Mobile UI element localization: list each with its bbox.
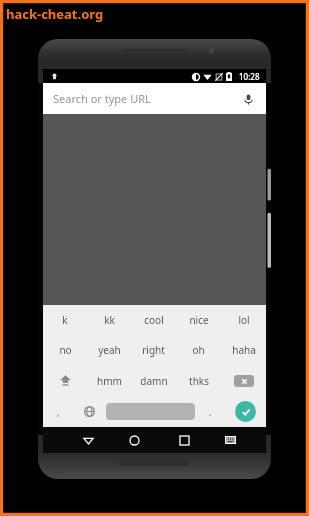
button[interactable]: Voice search (238, 89, 258, 109)
button[interactable]: lol (221, 305, 266, 335)
button[interactable]: right (131, 335, 176, 365)
button[interactable]: Search or type URL (43, 83, 266, 114)
button[interactable]: haha (221, 335, 266, 365)
button[interactable]: damn (131, 365, 176, 396)
button[interactable]: kk (87, 305, 131, 335)
staticText: kk (104, 313, 115, 327)
staticText: , (57, 406, 60, 418)
staticText: oh (192, 343, 205, 357)
button[interactable]: cool (131, 305, 176, 335)
button[interactable]: k (43, 305, 87, 335)
button[interactable]: . (195, 396, 225, 427)
button[interactable]: Change language (73, 396, 106, 427)
staticText: thks (189, 374, 209, 388)
button[interactable]: Switch keyboard (209, 427, 251, 453)
button[interactable]: no (43, 335, 87, 365)
staticText: k (62, 313, 68, 327)
staticText: . (209, 406, 212, 418)
staticText: cool (144, 313, 164, 327)
staticText: damn (140, 374, 168, 388)
button[interactable]: Enter (235, 401, 256, 422)
button[interactable]: thks (176, 365, 221, 396)
button[interactable]: yeah (87, 335, 131, 365)
staticText: nice (189, 313, 209, 327)
staticText: haha (232, 343, 256, 357)
button[interactable]: Recent apps (159, 427, 209, 453)
button[interactable]: nice (176, 305, 221, 335)
staticText: 10:28 (239, 71, 260, 82)
button[interactable]: Backspace (221, 365, 266, 396)
button[interactable]: Shift (43, 365, 87, 396)
staticText: right (142, 343, 165, 357)
staticText: hack-cheat.org (6, 5, 104, 23)
button[interactable]: hmm (87, 365, 131, 396)
staticText: hmm (97, 374, 122, 388)
button[interactable]: oh (176, 335, 221, 365)
staticText: lol (238, 313, 250, 327)
button[interactable]: Home (109, 427, 159, 453)
staticText: Search or type URL (53, 91, 238, 106)
button[interactable]: Space (106, 403, 195, 420)
button[interactable]: , (43, 396, 73, 427)
staticText: no (59, 343, 72, 357)
button[interactable]: Back (67, 427, 109, 453)
staticText: yeah (98, 343, 121, 357)
